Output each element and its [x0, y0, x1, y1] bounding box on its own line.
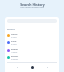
staticText: 2 weeks: [11, 58, 19, 61]
button[interactable]: Resort: [5, 54, 59, 61]
staticText: Rental: [11, 48, 19, 51]
staticText: 5 days: [11, 43, 17, 46]
button[interactable]: Profile: [44, 64, 50, 70]
staticText: Resort: [11, 55, 19, 58]
staticText: Search History: [20, 2, 45, 7]
button[interactable]: Paris: [5, 39, 59, 46]
staticText: Your recent activity here: [20, 6, 44, 9]
button[interactable]: Tokyo: [5, 32, 59, 39]
staticText: 1 week: [11, 51, 18, 54]
button[interactable]: Home: [14, 64, 20, 70]
staticText: Paris: [11, 40, 17, 43]
button[interactable]: Search: [29, 64, 35, 70]
staticText: Recent: [7, 27, 15, 30]
staticText: Tokyo: [11, 33, 18, 36]
staticText: 2 days: [11, 36, 17, 39]
button[interactable]: Rental: [5, 47, 59, 54]
